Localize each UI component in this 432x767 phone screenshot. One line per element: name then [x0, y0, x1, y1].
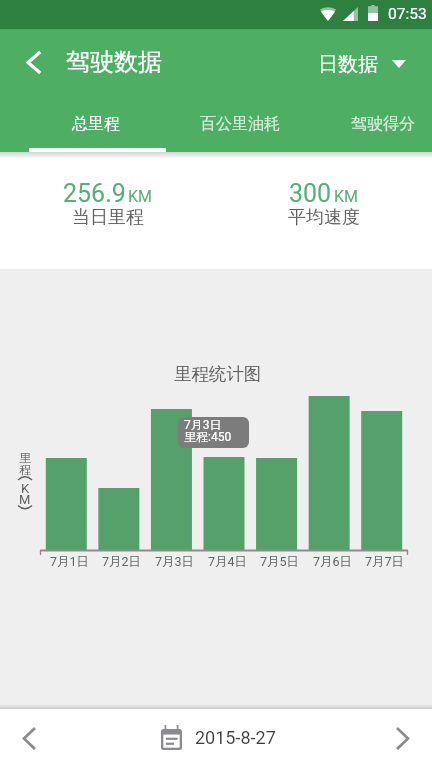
staticText: 7月7日 — [365, 554, 405, 570]
button[interactable]: 总里程 — [24, 95, 168, 152]
staticText: KM — [128, 187, 153, 206]
staticText: 里程统计图 — [174, 363, 262, 385]
button[interactable]: Previous day — [6, 715, 52, 761]
staticText: 百公里油耗 — [200, 114, 280, 134]
staticText: 7月6日 — [313, 554, 353, 570]
staticText: 256.9 — [63, 179, 126, 208]
button[interactable]: Back — [11, 40, 56, 85]
staticText: 驾驶数据 — [66, 47, 162, 77]
staticText: 7月5日 — [260, 554, 300, 570]
staticText: 平均速度 — [288, 206, 360, 229]
button[interactable]: 百公里油耗 — [168, 95, 312, 152]
button[interactable]: 驾驶得分 — [311, 95, 432, 152]
staticText: 07:53 — [388, 5, 427, 23]
staticText: 300 — [289, 179, 332, 208]
staticText: 7月2日 — [102, 554, 142, 570]
staticText: 7月4日 — [208, 554, 248, 570]
staticText: 7月3日 — [155, 554, 195, 570]
staticText: 里 — [19, 450, 31, 465]
staticText: 驾驶得分 — [351, 114, 415, 134]
staticText: 当日里程 — [72, 206, 144, 229]
staticText: M — [19, 492, 31, 507]
staticText: 里程:450 — [184, 429, 232, 444]
staticText: 7月3日 — [184, 417, 222, 432]
button[interactable]: 日数据 — [306, 44, 418, 82]
staticText: K — [21, 481, 30, 496]
staticText: 程 — [19, 462, 31, 477]
staticText: 2015-8-27 — [195, 727, 276, 748]
button[interactable]: Next day — [380, 715, 426, 761]
button[interactable]: 2015-8-27 — [155, 722, 276, 752]
staticText: KM — [334, 187, 359, 206]
staticText: 总里程 — [72, 114, 120, 134]
staticText: 7月1日 — [50, 554, 90, 570]
staticText: 日数据 — [318, 52, 378, 77]
